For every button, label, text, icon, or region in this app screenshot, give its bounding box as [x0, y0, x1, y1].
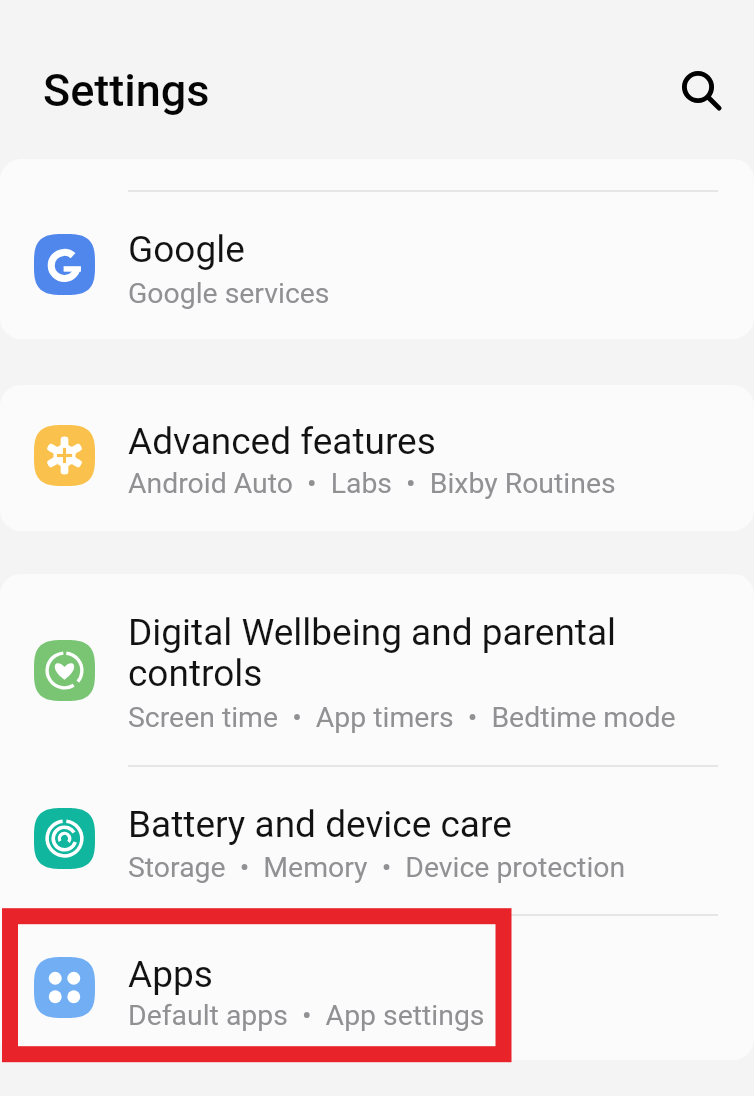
staticText: Google services	[128, 277, 330, 310]
staticText: Android Auto • Labs • Bixby Routines	[128, 467, 616, 500]
button[interactable]: Google	[0, 190, 754, 339]
button[interactable]: Advanced features	[0, 385, 754, 531]
staticText: Screen time • App timers • Bedtime mode	[128, 701, 676, 734]
staticText: Storage • Memory • Device protection	[128, 851, 626, 884]
button[interactable]: Digital Wellbeing and parental	[0, 574, 754, 765]
staticText: Default apps • App settings	[128, 999, 485, 1032]
staticText: Advanced features	[128, 420, 436, 463]
staticText: controls	[128, 652, 263, 695]
staticText: Digital Wellbeing and parental	[128, 611, 617, 654]
button[interactable]: Apps	[0, 914, 754, 1060]
staticText: Google	[128, 228, 245, 271]
staticText: Battery and device care	[128, 803, 512, 846]
button[interactable]: Search	[668, 57, 728, 117]
button[interactable]: Battery and device care	[0, 766, 754, 913]
staticText: Apps	[128, 953, 213, 996]
staticText: Settings	[43, 64, 210, 117]
